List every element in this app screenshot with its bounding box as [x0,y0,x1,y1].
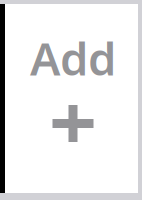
button[interactable]: Add [5,4,138,193]
staticText: Add [30,28,116,88]
